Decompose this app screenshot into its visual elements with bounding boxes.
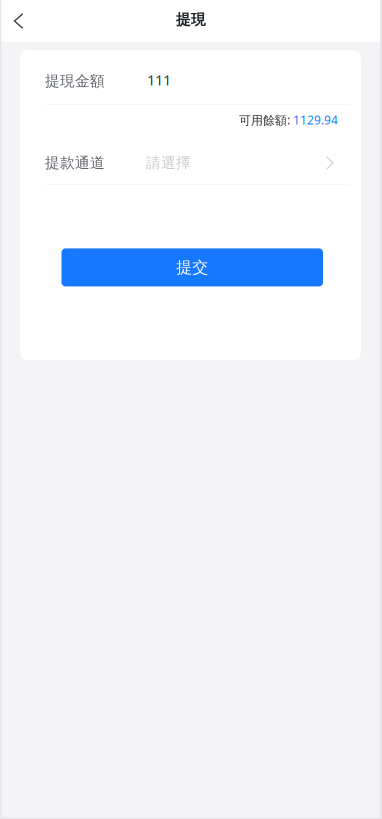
staticText: 1129.94	[290, 112, 338, 128]
button[interactable]: 提交	[61, 248, 323, 286]
staticText: 提現金額	[45, 72, 105, 90]
staticText: 提款通道	[45, 154, 105, 172]
staticText: 提現	[176, 10, 206, 28]
staticText: 提交	[176, 258, 208, 277]
button[interactable]: Back	[0, 0, 44, 42]
button[interactable]: 提款通道	[20, 142, 361, 184]
staticText: 請選擇	[146, 154, 191, 172]
staticText: 可用餘額:	[239, 112, 290, 128]
staticText: 111	[147, 70, 171, 89]
button[interactable]: 提現金額	[20, 50, 361, 104]
